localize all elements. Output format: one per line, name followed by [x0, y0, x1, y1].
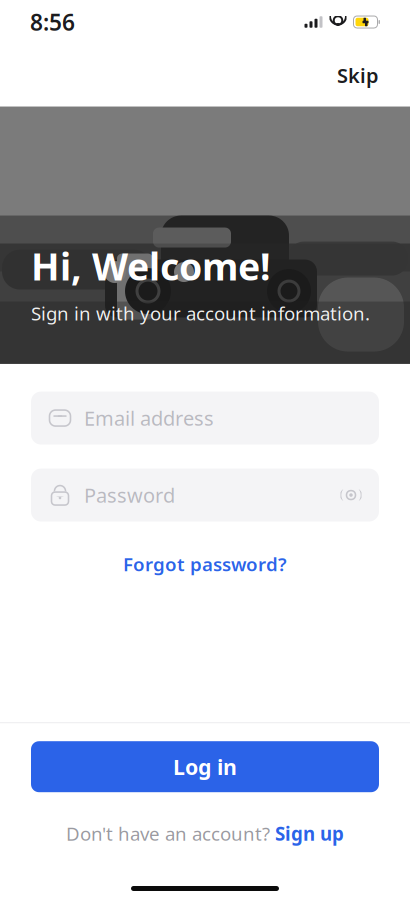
- staticText: Log in: [173, 752, 237, 781]
- button[interactable]: Skip: [327, 56, 389, 95]
- button[interactable]: Log in: [31, 741, 379, 792]
- staticText: Skip: [337, 62, 379, 89]
- button[interactable]: Forgot password?: [113, 544, 297, 584]
- button[interactable]: Don't have an account?: [56, 815, 354, 852]
- staticText: Sign in with your account information.: [31, 301, 370, 326]
- button[interactable]: Email address: [31, 392, 379, 445]
- staticText: Sign up: [275, 821, 344, 846]
- staticText: Don't have an account?: [66, 821, 270, 846]
- staticText: Email address: [84, 405, 214, 431]
- staticText: 8:56: [30, 7, 75, 37]
- staticText: Hi, Welcome!: [31, 241, 271, 291]
- button[interactable]: Password: [31, 469, 379, 522]
- staticText: Password: [84, 482, 175, 508]
- staticText: Forgot password?: [123, 552, 287, 576]
